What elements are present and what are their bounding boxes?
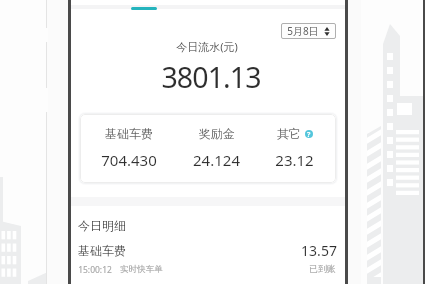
- staticText: 今日明细: [78, 218, 126, 233]
- staticText: 基础车费: [78, 243, 126, 258]
- button[interactable]: 说明: [305, 130, 313, 138]
- staticText: 13.57: [301, 241, 337, 260]
- staticText: 15:00:12: [78, 264, 112, 276]
- staticText: 704.430: [101, 150, 157, 170]
- staticText: 23.12: [275, 150, 314, 170]
- staticText: 24.124: [193, 150, 240, 170]
- staticText: 5月8日: [287, 24, 319, 38]
- staticText: 其它: [277, 126, 301, 141]
- staticText: 实时快车单: [120, 264, 163, 275]
- button[interactable]: 基础车费: [80, 114, 177, 183]
- staticText: 已到账: [309, 263, 336, 274]
- button[interactable]: 其它: [253, 114, 336, 183]
- button[interactable]: 基础车费: [71, 238, 345, 280]
- button[interactable]: 选择日期 5月8日: [281, 23, 336, 39]
- staticText: 奖励金: [199, 126, 235, 141]
- staticText: 3801.13: [161, 58, 261, 97]
- button[interactable]: 奖励金: [168, 114, 265, 183]
- staticText: 今日流水(元): [176, 39, 238, 54]
- staticText: ?: [307, 130, 311, 138]
- staticText: 基础车费: [105, 126, 153, 141]
